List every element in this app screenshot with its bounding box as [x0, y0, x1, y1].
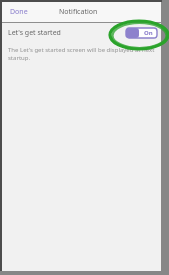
staticText: Notification	[59, 7, 98, 17]
staticText: The Let's get started screen will be dis…	[8, 46, 155, 62]
staticText: Let's get started	[8, 28, 61, 38]
button[interactable]: Done	[2, 2, 34, 22]
button[interactable]: Let's get started	[2, 23, 161, 42]
button[interactable]: On	[126, 28, 157, 38]
staticText: On	[144, 29, 153, 37]
staticText: Done	[10, 7, 28, 17]
